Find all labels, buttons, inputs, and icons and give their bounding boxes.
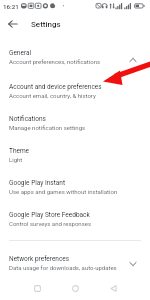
- button[interactable]: Google Play Store Feedback: [0, 204, 150, 236]
- button[interactable]: Home: [67, 280, 83, 296]
- staticText: Use apps and games without installation: [9, 188, 118, 195]
- staticText: General: [9, 49, 32, 57]
- staticText: Account and device preferences: [9, 83, 102, 91]
- staticText: Manage notification settings: [9, 124, 86, 131]
- staticText: Google Play Store Feedback: [9, 211, 90, 219]
- staticText: Theme: [9, 147, 30, 155]
- staticText: Control surveys and responses: [9, 220, 92, 227]
- button[interactable]: Account and device preferences: [0, 76, 150, 108]
- button[interactable]: Back: [105, 280, 121, 296]
- staticText: Settings: [31, 20, 61, 29]
- staticText: 16:21: [3, 3, 19, 10]
- button[interactable]: Notifications: [0, 108, 150, 140]
- staticText: Account preferences, notifications: [9, 58, 101, 65]
- staticText: Data usage for downloads, auto-updates: [9, 264, 117, 271]
- staticText: Network preferences: [9, 255, 70, 263]
- staticText: Light: [9, 156, 23, 163]
- button[interactable]: General: [0, 44, 150, 76]
- staticText: Account email, country, & history: [9, 92, 96, 99]
- button[interactable]: Google Play Instant: [0, 172, 150, 204]
- button[interactable]: Back: [4, 15, 22, 33]
- button[interactable]: Network preferences: [0, 248, 150, 280]
- staticText: Google Play Instant: [9, 179, 66, 187]
- button[interactable]: Theme: [0, 140, 150, 172]
- button[interactable]: Recent apps: [29, 280, 45, 296]
- staticText: Notifications: [9, 115, 46, 123]
